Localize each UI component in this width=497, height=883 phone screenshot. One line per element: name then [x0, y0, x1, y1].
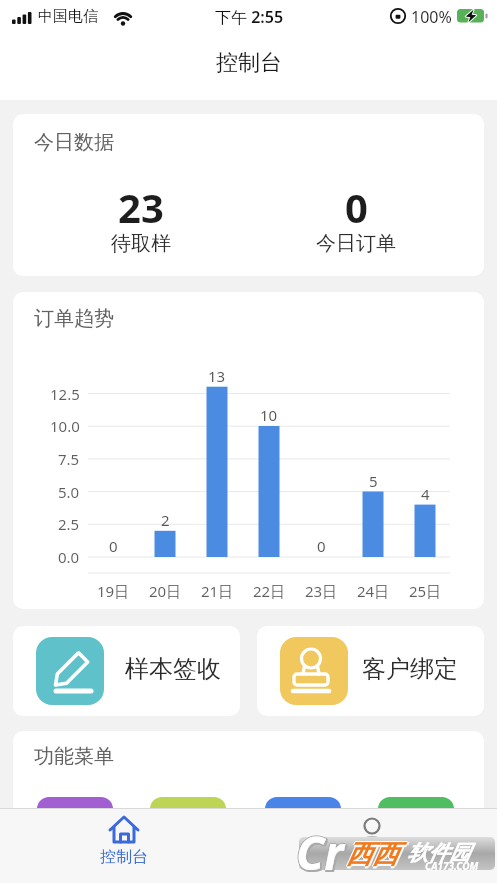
- staticText: CA173.COM: [425, 859, 479, 873]
- button[interactable]: [150, 797, 226, 857]
- staticText: 4: [421, 484, 430, 504]
- staticText: 控制台: [100, 847, 148, 867]
- staticText: 23日: [305, 581, 338, 601]
- staticText: 功能菜单: [34, 744, 114, 769]
- staticText: 23: [118, 180, 164, 234]
- staticText: 13: [208, 366, 226, 386]
- staticText: Cr: [298, 823, 346, 883]
- staticText: 西西: [346, 837, 398, 870]
- staticText: 2.5: [58, 514, 80, 534]
- staticText: 10: [260, 405, 278, 425]
- staticText: 0: [109, 536, 118, 556]
- staticText: Cr: [296, 820, 344, 883]
- staticText: 中国电信: [38, 7, 98, 26]
- staticText: 21日: [201, 581, 234, 601]
- staticText: 西西: [346, 840, 398, 873]
- staticText: 12.5: [50, 384, 80, 404]
- staticText: 客户绑定: [362, 654, 458, 684]
- staticText: 19日: [97, 581, 130, 601]
- staticText: 0: [317, 536, 326, 556]
- staticText: 样本签收: [125, 654, 221, 684]
- staticText: 订单趋势: [34, 306, 114, 331]
- staticText: Cr: [295, 821, 343, 883]
- staticText: 今日数据: [34, 130, 114, 155]
- staticText: 10.0: [50, 416, 80, 436]
- button[interactable]: [62, 808, 186, 883]
- button[interactable]: [37, 797, 113, 857]
- staticText: 5: [369, 471, 378, 491]
- staticText: 24日: [357, 581, 390, 601]
- staticText: 25日: [409, 581, 442, 601]
- staticText: Cr: [296, 821, 344, 883]
- staticText: 0: [345, 180, 368, 234]
- staticText: 软件园: [407, 840, 470, 866]
- staticText: 2: [161, 510, 170, 530]
- staticText: 西西: [345, 838, 397, 871]
- staticText: Cr: [298, 821, 346, 883]
- staticText: 西西: [348, 838, 400, 871]
- staticText: 下午 2:55: [215, 6, 284, 28]
- staticText: Cr: [296, 823, 344, 883]
- staticText: 20日: [149, 581, 182, 601]
- staticText: 西西: [346, 838, 398, 871]
- staticText: 待取样: [111, 231, 171, 256]
- button[interactable]: 样本签收: [13, 626, 240, 716]
- staticText: 5.0: [58, 482, 80, 502]
- staticText: 100%: [411, 6, 452, 28]
- button[interactable]: 客户绑定: [257, 626, 484, 716]
- button[interactable]: [378, 797, 454, 857]
- button[interactable]: [310, 808, 434, 883]
- button[interactable]: [265, 797, 341, 857]
- staticText: 22日: [253, 581, 286, 601]
- staticText: 7.5: [58, 449, 80, 469]
- staticText: 控制台: [216, 49, 282, 77]
- staticText: 0.0: [58, 547, 80, 567]
- staticText: 今日订单: [316, 231, 396, 256]
